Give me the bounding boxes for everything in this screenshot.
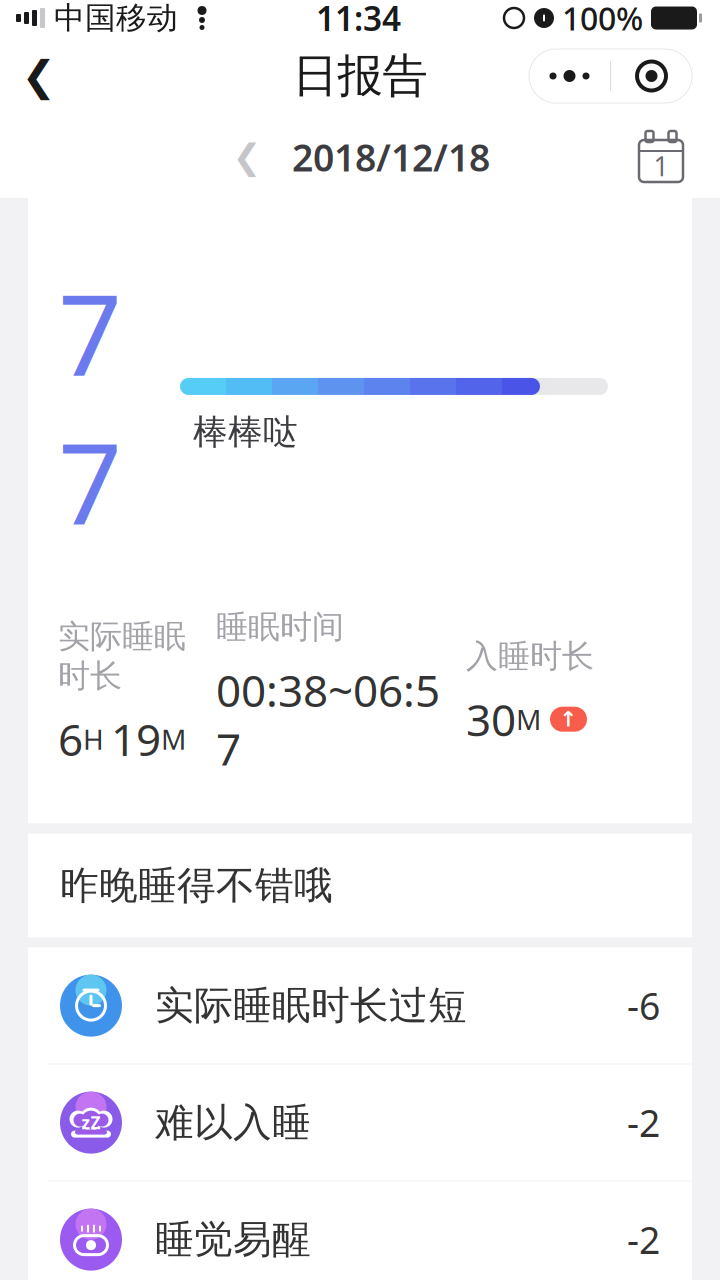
staticText: 入睡时长: [466, 637, 594, 676]
staticText: 实际睡眠时长过短: [155, 982, 467, 1029]
staticText: 实际睡眠时长: [58, 617, 186, 696]
staticText: -2: [627, 1098, 660, 1147]
staticText: 100%: [562, 0, 643, 39]
staticText: 77: [58, 258, 122, 555]
staticText: 睡眠时间: [216, 607, 344, 647]
staticText: zZ: [81, 1111, 100, 1134]
staticText: 2018/12/18: [292, 132, 490, 182]
staticText: 睡觉易醒: [155, 1216, 311, 1263]
button[interactable]: 前一天: [224, 132, 270, 182]
staticText: 00:38~06:57: [216, 661, 440, 778]
staticText: 棒棒哒: [193, 411, 298, 453]
staticText: ↑: [559, 707, 577, 731]
staticText: -6: [627, 981, 660, 1030]
staticText: ❮: [232, 137, 261, 177]
button[interactable]: 选择日期: [628, 125, 694, 189]
staticText: M: [161, 720, 186, 757]
button[interactable]: 睡觉易醒: [28, 1182, 692, 1280]
staticText: 1: [653, 148, 668, 184]
staticText: 19: [111, 710, 161, 768]
staticText: 日报告: [292, 48, 427, 104]
staticText: H: [83, 720, 104, 757]
button[interactable]: zZ: [28, 1065, 692, 1182]
staticText: 30: [466, 690, 516, 748]
staticText: 难以入睡: [155, 1099, 311, 1146]
button[interactable]: 实际睡眠时长过短: [28, 948, 692, 1065]
staticText: ❮: [21, 52, 56, 99]
staticText: 昨晚睡得不错哦: [60, 862, 333, 909]
button[interactable]: 2018/12/18: [286, 124, 496, 190]
staticText: 中国移动: [54, 0, 178, 37]
button[interactable]: 关闭小程序: [611, 49, 692, 103]
staticText: M: [516, 701, 541, 738]
button[interactable]: 返回: [8, 45, 70, 107]
staticText: 11:34: [316, 0, 401, 40]
staticText: 6: [58, 710, 83, 768]
staticText: -2: [627, 1215, 660, 1264]
button[interactable]: 更多: [529, 49, 610, 103]
